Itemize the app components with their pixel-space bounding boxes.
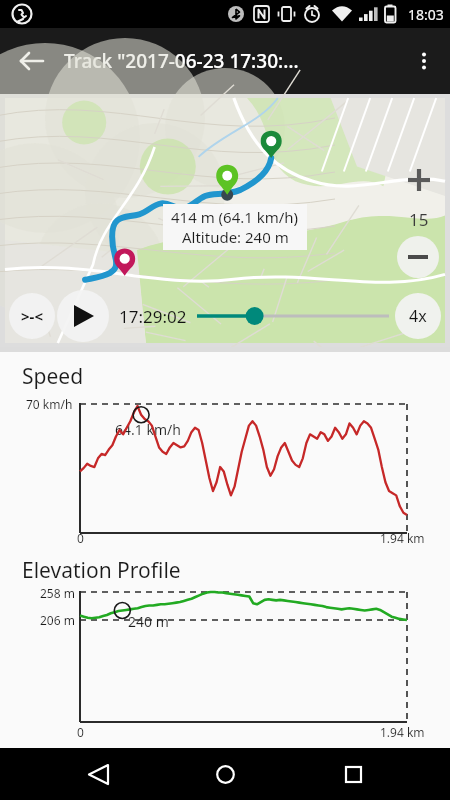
staticText: >-< (21, 306, 43, 326)
staticText: 414 m (64.1 km/h) (171, 207, 299, 227)
staticText: 1.94 km (380, 530, 425, 546)
button[interactable]: Recent apps (323, 748, 383, 800)
staticText: 206 m (40, 612, 75, 628)
button[interactable]: Home (195, 748, 255, 800)
button[interactable]: Playback speed 4x (395, 293, 441, 339)
staticText: Track "2017-06-23 17:30:… (64, 48, 299, 74)
staticText: 240 m (128, 612, 169, 631)
staticText: 70 km/h (26, 396, 73, 412)
button[interactable]: Back (8, 37, 56, 85)
staticText: 0 (77, 724, 84, 740)
staticText: 18:03 (408, 5, 444, 24)
staticText: 1.94 km (380, 724, 425, 740)
staticText: Elevation Profile (22, 556, 181, 585)
staticText: Speed (22, 362, 84, 391)
staticText: 4x (409, 305, 427, 327)
button[interactable]: Play (57, 290, 109, 342)
staticText: 15 (409, 208, 429, 231)
button[interactable]: Zoom in (399, 160, 439, 200)
staticText: 17:29:02 (119, 305, 187, 328)
button[interactable]: Back (68, 748, 128, 800)
button[interactable]: Seek (197, 298, 389, 334)
button[interactable]: Zoom out (397, 236, 439, 278)
staticText: 64.1 km/h (115, 420, 181, 439)
button[interactable]: Fit track (9, 293, 55, 339)
staticText: 0 (77, 530, 84, 546)
button[interactable]: More options (402, 39, 446, 83)
staticText: 258 m (40, 585, 75, 601)
staticText: Altitude: 240 m (182, 227, 289, 247)
